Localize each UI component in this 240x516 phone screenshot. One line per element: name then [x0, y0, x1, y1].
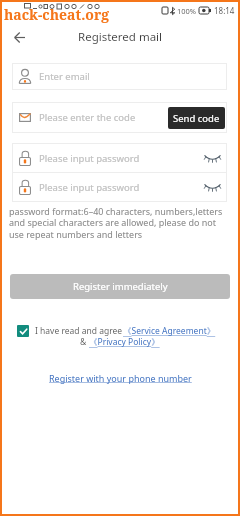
staticText: Please input password — [39, 152, 140, 165]
button[interactable]: Register with your phone number — [49, 372, 192, 384]
staticText: & — [80, 336, 89, 348]
staticText: Register immediately — [73, 280, 168, 293]
staticText: 100% — [177, 6, 197, 16]
button[interactable]: Register immediately — [10, 274, 230, 299]
staticText: hack-cheat.org — [4, 5, 110, 24]
staticText: Send code — [173, 112, 220, 125]
staticText: I have read and agree — [35, 325, 123, 337]
button[interactable]: 《Privacy Policy》 — [89, 336, 160, 348]
button[interactable]: Back — [7, 25, 31, 49]
staticText: Enter email — [39, 70, 90, 83]
button[interactable]: Toggle password visibility — [201, 147, 223, 169]
button[interactable]: 《Service Agreement》 — [123, 325, 216, 337]
staticText: password format:6–40 characters, numbers… — [9, 205, 230, 241]
button[interactable]: Send code — [168, 107, 225, 129]
staticText: Registered mail — [78, 29, 163, 45]
staticText: Please enter the code — [39, 111, 136, 124]
staticText: 18:14 — [214, 5, 235, 16]
staticText: Please input password — [39, 181, 140, 194]
button[interactable]: Agree to terms — [17, 325, 29, 337]
button[interactable]: Toggle password visibility — [201, 176, 223, 198]
